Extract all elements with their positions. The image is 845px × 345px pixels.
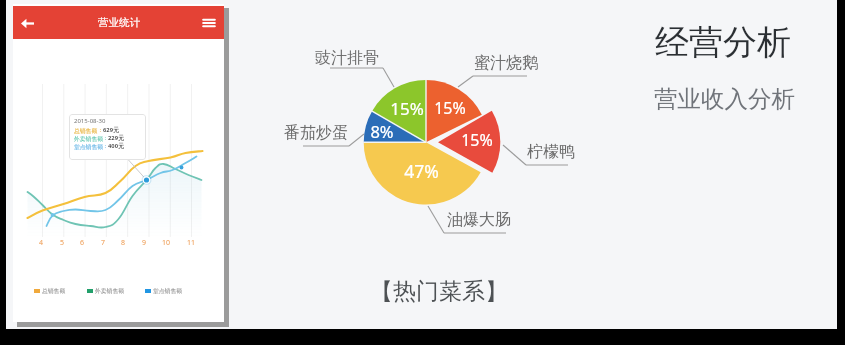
- button[interactable]: 营业统计: [13, 6, 224, 39]
- staticText: 8: [121, 238, 126, 248]
- staticText: 外卖销售额: [95, 287, 124, 294]
- button[interactable]: Menu: [198, 12, 220, 34]
- staticText: 总销售额: [74, 127, 98, 134]
- staticText: 油爆大肠: [447, 210, 511, 230]
- staticText: :: [98, 126, 103, 134]
- staticText: 外卖销售额: [74, 135, 103, 142]
- staticText: 47%: [404, 159, 439, 183]
- staticText: 柠檬鸭: [527, 142, 575, 162]
- button[interactable]: 外卖销售额: [87, 287, 124, 294]
- staticText: 总销售额: [42, 287, 66, 294]
- button[interactable]: 堂点销售额: [145, 287, 182, 294]
- staticText: 8%: [370, 120, 394, 142]
- staticText: 7: [101, 238, 106, 248]
- staticText: 【热门菜系】: [370, 277, 508, 306]
- staticText: 4: [39, 238, 44, 248]
- staticText: 营业统计: [98, 16, 140, 29]
- staticText: 堂点销售额: [74, 143, 103, 150]
- staticText: 5: [60, 238, 65, 248]
- staticText: 9: [142, 238, 147, 248]
- staticText: :: [103, 134, 108, 142]
- staticText: 6: [80, 238, 85, 248]
- staticText: 629元: [103, 126, 119, 134]
- staticText: :: [103, 142, 108, 150]
- staticText: 400元: [108, 142, 124, 150]
- staticText: 15%: [390, 97, 424, 120]
- staticText: 15%: [434, 97, 466, 119]
- staticText: 经营分析: [655, 21, 791, 64]
- staticText: 2015-08-30: [74, 117, 106, 125]
- staticText: 蜜汁烧鹅: [474, 53, 538, 73]
- staticText: 堂点销售额: [153, 287, 182, 294]
- staticText: 229元: [108, 134, 124, 142]
- staticText: 营业收入分析: [654, 84, 795, 114]
- button[interactable]: 总销售额: [34, 287, 66, 294]
- button[interactable]: Back: [16, 12, 38, 34]
- staticText: 10: [162, 238, 171, 248]
- staticText: 番茄炒蛋: [284, 123, 348, 143]
- staticText: 11: [187, 238, 196, 248]
- staticText: 15%: [461, 129, 493, 151]
- staticText: 豉汁排骨: [315, 48, 379, 68]
